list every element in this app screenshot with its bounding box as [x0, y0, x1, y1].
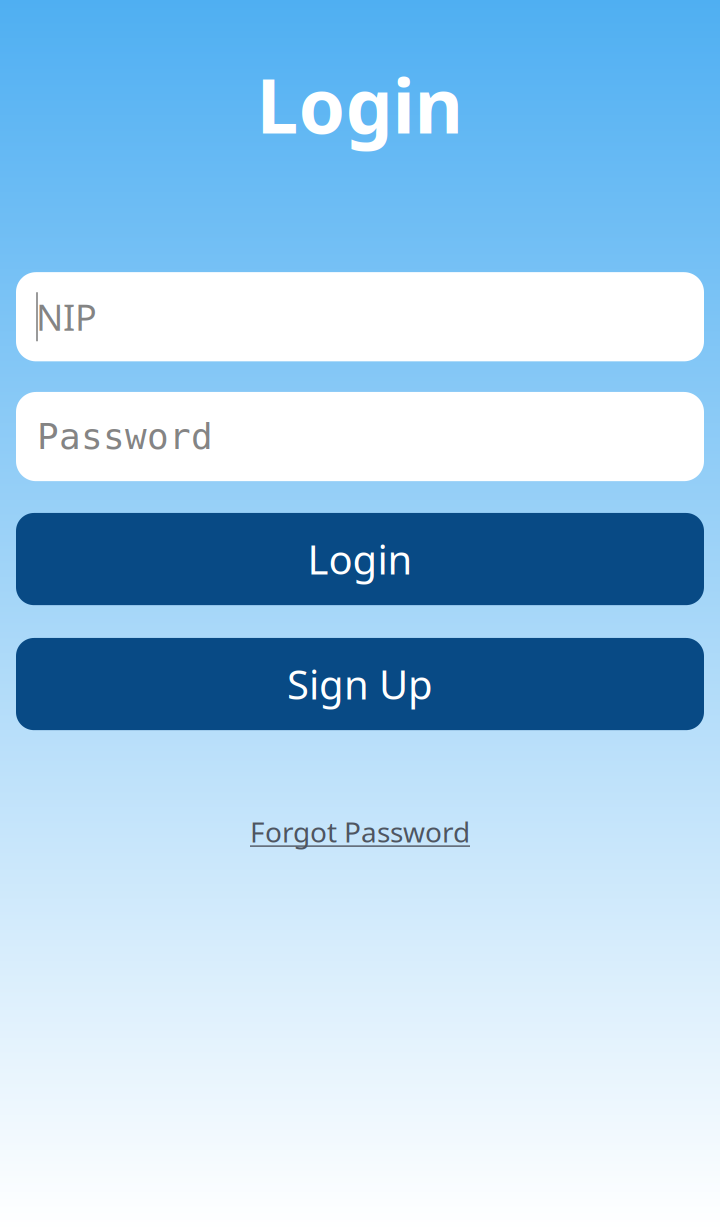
button[interactable]: NIP [16, 272, 704, 361]
staticText: Forgot Password [250, 813, 470, 850]
button[interactable]: Password [16, 392, 704, 481]
button[interactable]: Sign Up [16, 638, 704, 730]
staticText: NIP [36, 293, 97, 341]
staticText: Login [307, 532, 412, 586]
staticText: Password [37, 416, 213, 457]
staticText: Login [256, 55, 463, 154]
staticText: Sign Up [287, 657, 433, 711]
button[interactable]: Forgot Password [250, 813, 470, 850]
button[interactable]: Login [16, 513, 704, 605]
